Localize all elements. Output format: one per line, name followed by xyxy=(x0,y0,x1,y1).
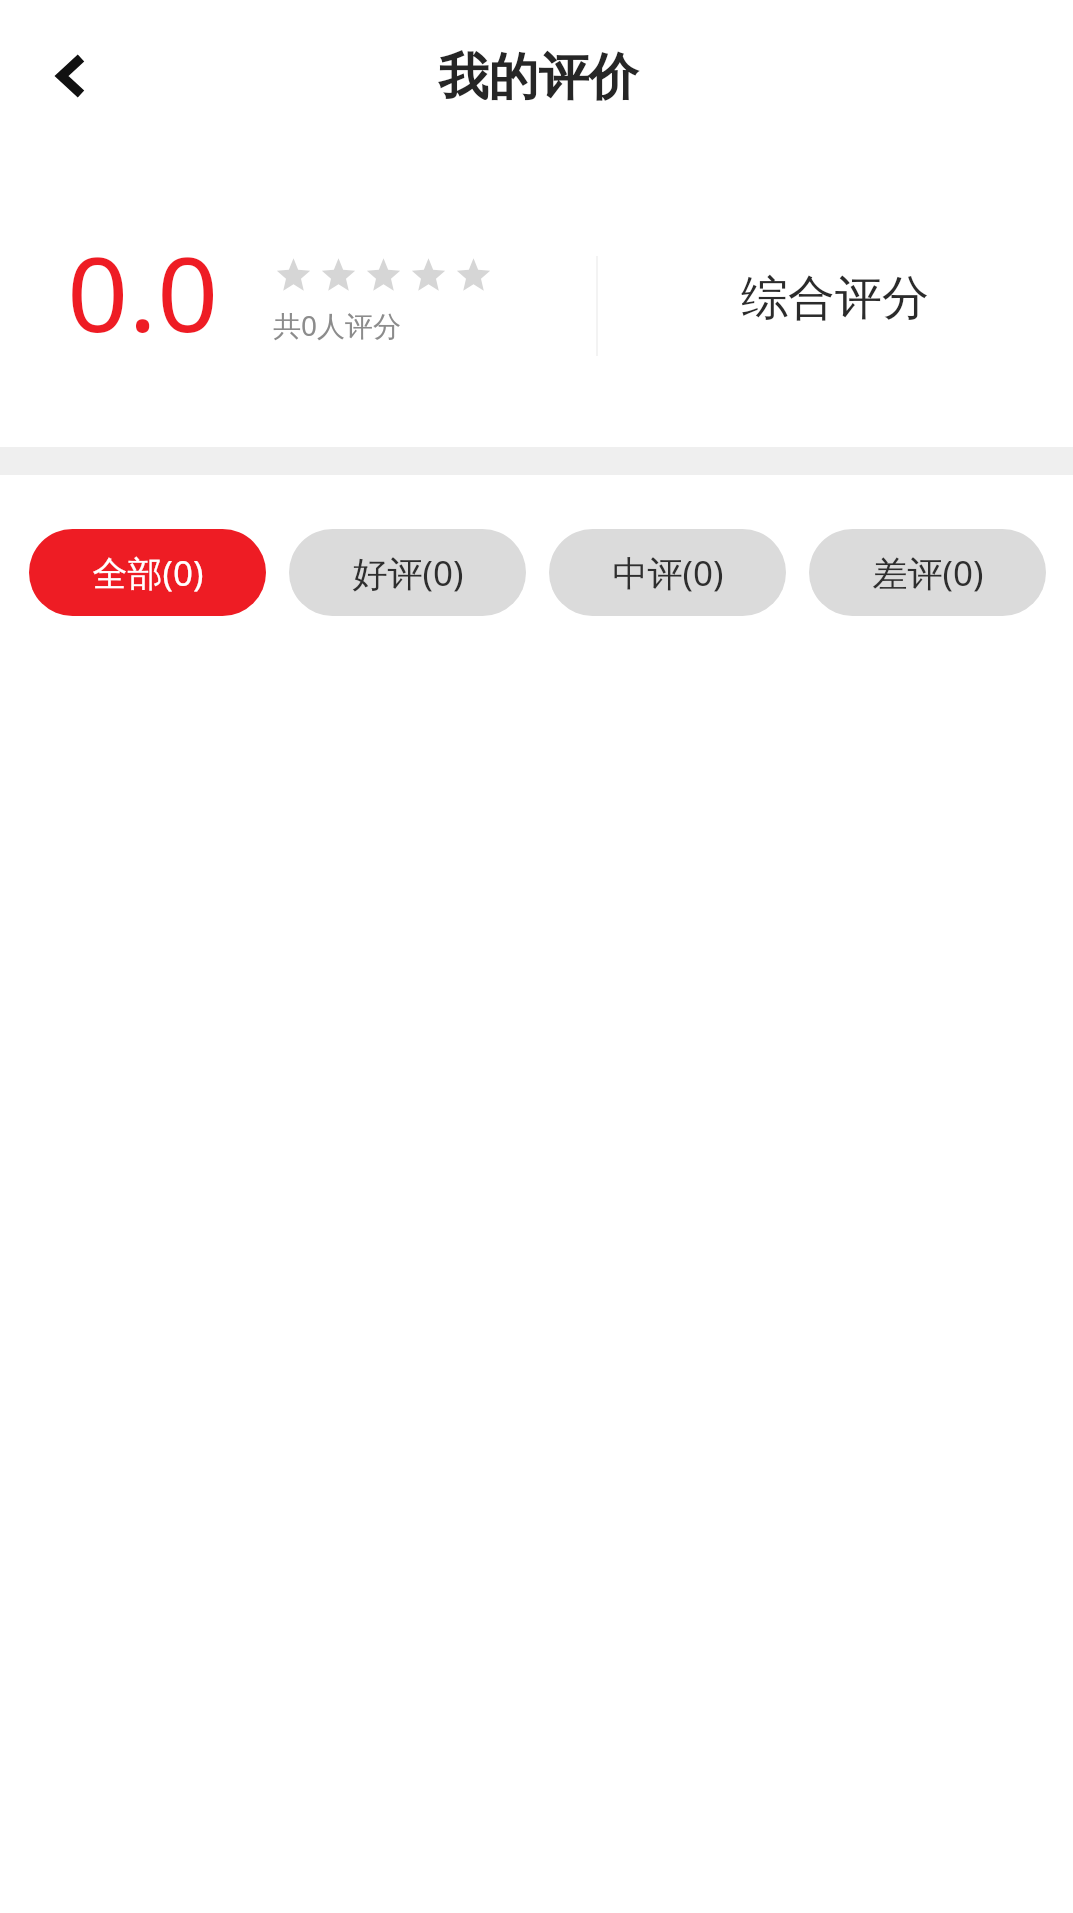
button[interactable]: Back xyxy=(20,36,104,120)
staticText: 共0人评分 xyxy=(273,306,402,344)
staticText: 综合评分 xyxy=(741,269,929,328)
staticText: 我的评价 xyxy=(2,46,1073,109)
staticText: 好评(0) xyxy=(352,549,464,597)
button[interactable]: 差评(0) xyxy=(809,529,1046,616)
button[interactable]: 中评(0) xyxy=(549,529,786,616)
staticText: 中评(0) xyxy=(612,549,724,597)
staticText: 差评(0) xyxy=(872,549,984,597)
staticText: 0.0 xyxy=(67,222,219,362)
button[interactable]: 全部(0) xyxy=(29,529,266,616)
staticText: 全部(0) xyxy=(92,549,204,597)
button[interactable]: 好评(0) xyxy=(289,529,526,616)
